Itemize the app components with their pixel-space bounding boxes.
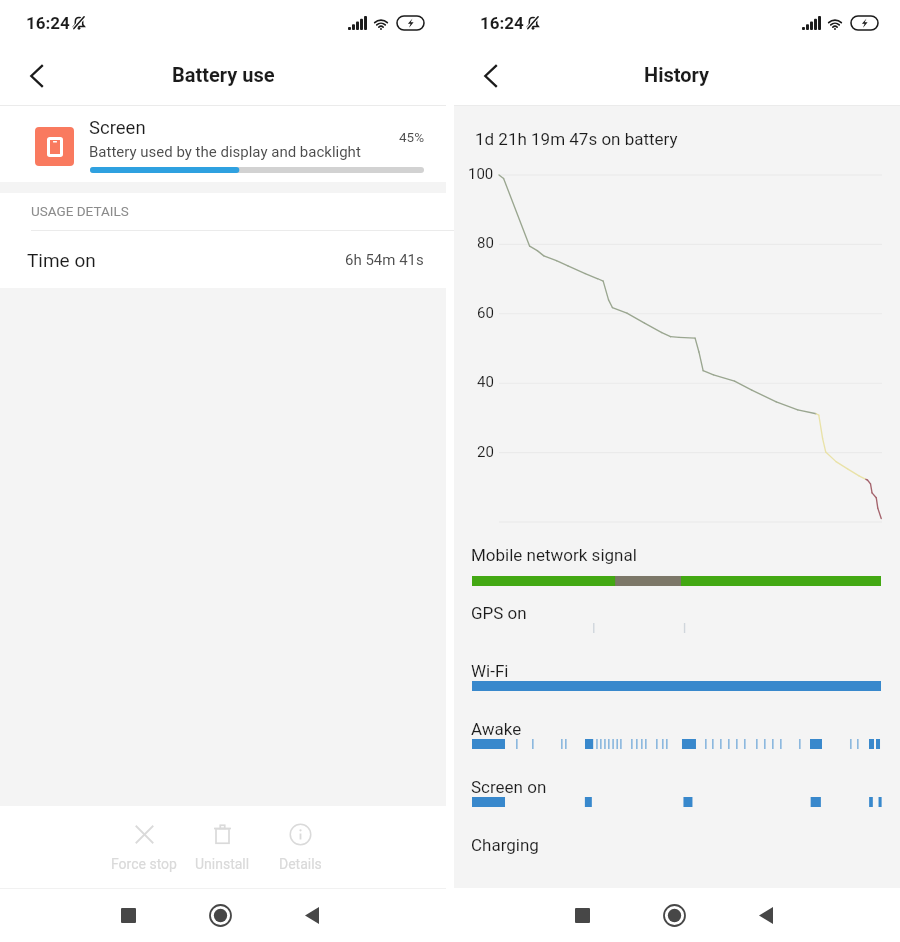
button[interactable]: Recent apps bbox=[83, 888, 174, 942]
staticText: Awake bbox=[471, 719, 522, 739]
staticText: Mobile network signal bbox=[471, 545, 637, 565]
staticText: Wi-Fi bbox=[471, 661, 509, 681]
button[interactable]: Details bbox=[261, 806, 339, 888]
button[interactable]: Back bbox=[720, 888, 812, 942]
button[interactable]: Back bbox=[12, 52, 60, 100]
staticText: 6h 54m 41s bbox=[345, 251, 424, 269]
staticText: 40 bbox=[477, 373, 494, 391]
staticText: Screen bbox=[89, 117, 146, 139]
staticText: 1d 21h 19m 47s on battery bbox=[475, 129, 678, 149]
staticText: Battery used by the display and backligh… bbox=[89, 143, 361, 161]
button[interactable]: Force stop bbox=[105, 806, 183, 888]
staticText: 45% bbox=[399, 129, 425, 145]
staticText: 60 bbox=[477, 304, 494, 322]
button[interactable]: Recent apps bbox=[537, 888, 628, 942]
staticText: Force stop bbox=[111, 856, 177, 872]
staticText: 16:24 bbox=[480, 13, 524, 33]
staticText: GPS on bbox=[471, 603, 527, 623]
button[interactable]: Uninstall bbox=[183, 806, 261, 888]
staticText: Uninstall bbox=[195, 856, 250, 872]
staticText: 80 bbox=[477, 234, 494, 252]
button[interactable]: Home bbox=[174, 888, 266, 942]
button[interactable]: Screen bbox=[0, 106, 446, 182]
button[interactable]: Back bbox=[466, 52, 514, 100]
button[interactable]: Time on bbox=[0, 231, 446, 288]
staticText: History bbox=[644, 63, 710, 86]
staticText: 16:24 bbox=[26, 13, 70, 33]
staticText: Battery use bbox=[172, 63, 275, 86]
staticText: Charging bbox=[471, 835, 539, 855]
staticText: USAGE DETAILS bbox=[31, 203, 129, 219]
button[interactable]: Home bbox=[628, 888, 720, 942]
staticText: Details bbox=[279, 856, 322, 872]
staticText: Screen on bbox=[471, 777, 547, 797]
staticText: 100 bbox=[468, 165, 494, 183]
staticText: Time on bbox=[27, 249, 96, 271]
staticText: 20 bbox=[477, 443, 494, 461]
button[interactable]: Back bbox=[266, 888, 358, 942]
